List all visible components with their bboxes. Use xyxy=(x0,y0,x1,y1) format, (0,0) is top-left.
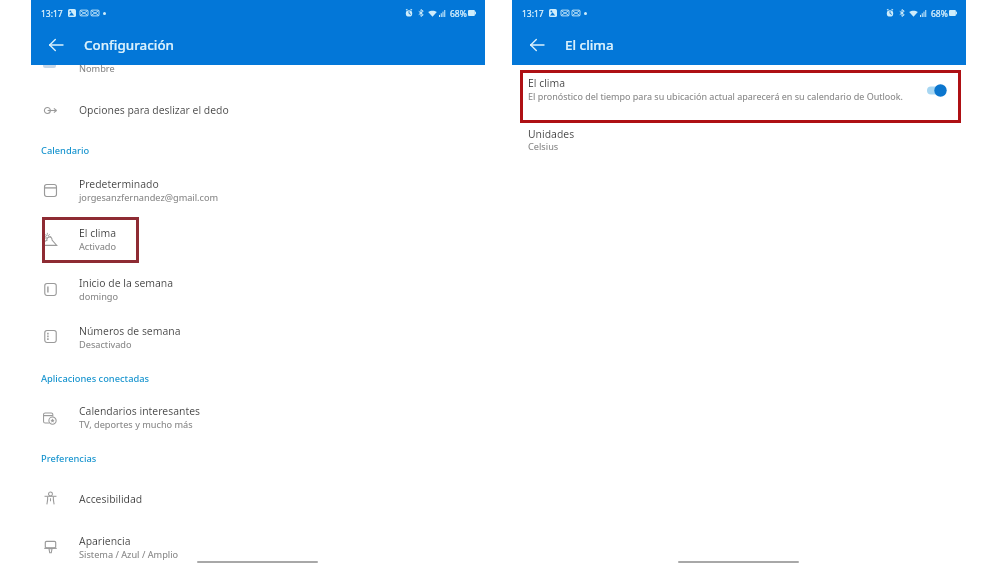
button[interactable]: Opciones para deslizar el dedo xyxy=(31,99,485,127)
button[interactable]: El clima xyxy=(31,222,485,261)
button[interactable]: Weather on xyxy=(921,78,953,102)
staticText: TV, deportes y mucho más xyxy=(79,418,193,431)
staticText: Calendario xyxy=(41,144,90,157)
staticText: Nombre xyxy=(79,62,115,75)
staticText: Activado xyxy=(79,240,116,253)
staticText: Números de semana xyxy=(79,324,181,338)
staticText: 13:17 xyxy=(41,8,63,20)
staticText: Configuración xyxy=(84,36,174,54)
button[interactable]: Accesibilidad xyxy=(31,488,485,516)
button[interactable]: Back xyxy=(38,27,74,63)
staticText: domingo xyxy=(79,290,119,303)
button[interactable]: El clima xyxy=(512,72,966,120)
staticText: Desactivado xyxy=(79,338,132,351)
staticText: Apariencia xyxy=(79,534,131,548)
staticText: Accesibilidad xyxy=(79,492,143,506)
button[interactable]: Apariencia xyxy=(31,530,485,567)
button[interactable]: Calendarios interesantes xyxy=(31,400,485,439)
staticText: jorgesanzfernandez@gmail.com xyxy=(79,191,219,204)
button[interactable]: Nombre xyxy=(31,52,485,76)
staticText: Unidades xyxy=(528,127,575,141)
staticText: Preferencias xyxy=(41,452,97,465)
staticText: Predeterminado xyxy=(79,177,159,191)
staticText: 13:17 xyxy=(522,8,544,20)
staticText: Sistema / Azul / Amplio xyxy=(79,548,179,561)
staticText: Calendarios interesantes xyxy=(79,404,200,418)
staticText: El clima xyxy=(79,226,117,240)
button[interactable]: Predeterminado xyxy=(31,173,485,212)
button[interactable]: Inicio de la semana xyxy=(31,272,485,311)
button[interactable]: Números de semana xyxy=(31,320,485,359)
staticText: Inicio de la semana xyxy=(79,276,174,290)
staticText: Opciones para deslizar el dedo xyxy=(79,103,229,117)
staticText: El pronóstico del tiempo para su ubicaci… xyxy=(528,90,903,102)
button[interactable]: Back xyxy=(519,27,555,63)
staticText: El clima xyxy=(565,36,614,54)
staticText: El clima xyxy=(528,76,566,90)
staticText: Celsius xyxy=(528,140,559,153)
button[interactable]: Unidades xyxy=(512,126,966,156)
staticText: Aplicaciones conectadas xyxy=(41,372,150,385)
staticText: 68% xyxy=(450,8,467,20)
staticText: 68% xyxy=(931,8,948,20)
